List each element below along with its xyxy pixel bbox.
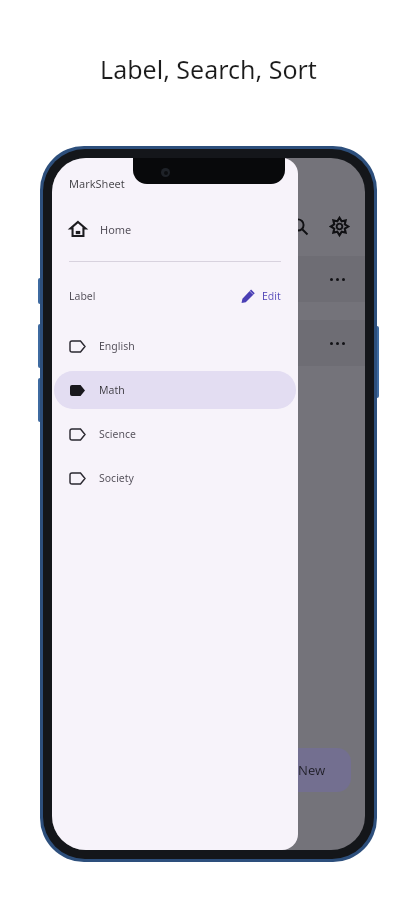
staticText: New [298,761,326,779]
button[interactable]: Edit [241,289,281,303]
button[interactable]: New [273,748,351,792]
button[interactable]: Settings [319,206,359,246]
button[interactable]: Home [52,211,298,247]
staticText: Math [99,383,125,397]
button[interactable]: Science [54,415,296,453]
staticText: MarkSheet [69,176,125,191]
button[interactable]: More options [323,265,351,293]
staticText: English [99,339,135,353]
staticText: Label [69,289,96,303]
staticText: Label, Search, Sort [100,52,317,86]
button[interactable]: More options [323,329,351,357]
button[interactable]: More options [52,256,365,302]
staticText: Home [100,222,132,237]
staticText: Edit [262,289,281,303]
button[interactable]: Society [54,459,296,497]
button[interactable]: English [54,327,296,365]
button[interactable]: Math [54,371,296,409]
button[interactable]: Search [279,206,319,246]
staticText: Science [99,427,136,441]
staticText: Society [99,471,134,485]
button[interactable]: More options [52,320,365,366]
